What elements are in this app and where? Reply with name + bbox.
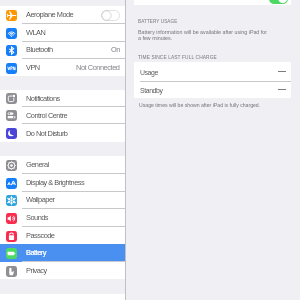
- staticText: VPN: [26, 63, 40, 71]
- staticText: Battery: [26, 248, 46, 256]
- staticText: General: [26, 160, 49, 168]
- button[interactable]: Passcode: [0, 227, 125, 245]
- button[interactable]: Bluetooth: [0, 41, 125, 59]
- button[interactable]: Do Not Disturb: [0, 125, 125, 142]
- staticText: Wallpaper: [26, 195, 55, 203]
- staticText: Bluetooth: [26, 45, 53, 53]
- button[interactable]: Aeroplane Mode: [0, 6, 125, 24]
- button[interactable]: Privacy: [0, 262, 125, 280]
- staticText: Privacy: [26, 266, 47, 274]
- staticText: Usage: [140, 69, 158, 77]
- button[interactable]: Usage: [134, 62, 291, 81]
- button[interactable]: VPN: [0, 59, 125, 77]
- staticText: TIME SINCE LAST FULL CHARGE: [138, 55, 217, 60]
- button[interactable]: General: [0, 156, 125, 174]
- staticText: Usage times will be shown after iPad is …: [139, 102, 261, 108]
- button[interactable]: WLAN: [0, 24, 125, 42]
- staticText: WLAN: [26, 28, 46, 36]
- button[interactable]: [134, 0, 291, 5]
- staticText: Passcode: [26, 231, 55, 239]
- staticText: Display & Brightness: [26, 178, 85, 186]
- staticText: Control Centre: [26, 111, 68, 119]
- button[interactable]: Display & Brightness: [0, 174, 125, 192]
- button[interactable]: Turn on: [101, 10, 120, 21]
- button[interactable]: Notifications: [0, 90, 125, 107]
- staticText: Sounds: [26, 213, 49, 221]
- staticText: Standby: [140, 87, 163, 95]
- button[interactable]: Wallpaper: [0, 191, 125, 209]
- button[interactable]: Standby: [134, 81, 291, 98]
- staticText: Notifications: [26, 94, 60, 102]
- button[interactable]: Battery: [0, 244, 125, 262]
- staticText: On: [111, 45, 120, 53]
- staticText: BATTERY USAGE: [138, 19, 178, 24]
- staticText: Do Not Disturb: [26, 129, 68, 137]
- button[interactable]: Control Centre: [0, 107, 125, 124]
- staticText: Aeroplane Mode: [26, 10, 74, 18]
- button[interactable]: Sounds: [0, 209, 125, 227]
- staticText: Battery information will be available af…: [138, 29, 267, 41]
- staticText: Not Connected: [76, 63, 120, 71]
